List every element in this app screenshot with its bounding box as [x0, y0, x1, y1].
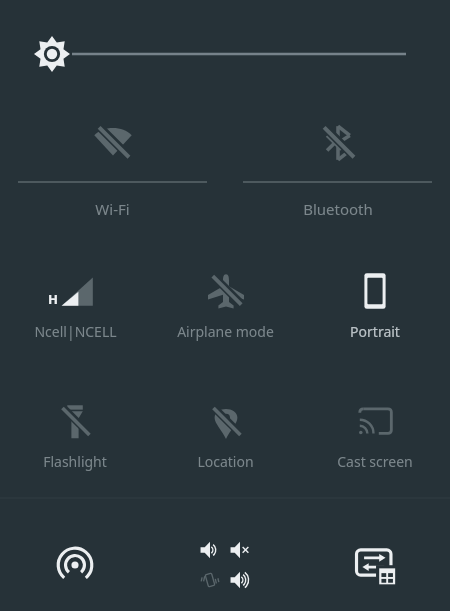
staticText: Airplane mode: [177, 322, 274, 341]
button[interactable]: Flashlight off: [43, 403, 107, 471]
staticText: Ncell|NCELL: [34, 322, 117, 341]
button[interactable]: Cellular data Ncell NCELL: [34, 271, 117, 341]
button[interactable]: Cast screen: [337, 403, 413, 471]
staticText: Bluetooth: [303, 199, 373, 219]
button[interactable]: Location off: [197, 403, 254, 471]
button[interactable]: Screen sharing: [300, 499, 450, 611]
staticText: H: [48, 290, 58, 308]
staticText: Portrait: [350, 322, 400, 341]
staticText: Wi-Fi: [95, 199, 130, 219]
staticText: Cast screen: [337, 452, 413, 471]
staticText: Flashlight: [43, 452, 107, 471]
button[interactable]: Portrait orientation locked: [350, 271, 400, 341]
button[interactable]: Airplane mode off: [177, 271, 274, 341]
button[interactable]: Bluetooth off: [225, 108, 450, 236]
staticText: Location: [197, 452, 254, 471]
button[interactable]: Brightness: [0, 0, 450, 108]
button[interactable]: Hotspot: [0, 499, 150, 611]
button[interactable]: Wi-Fi off: [0, 108, 225, 236]
button[interactable]: Sound mode: [150, 499, 300, 611]
